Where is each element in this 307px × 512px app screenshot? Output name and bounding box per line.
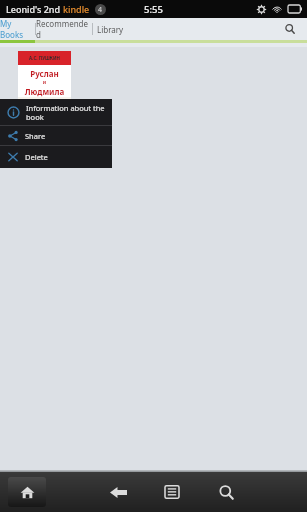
staticText: Руслан xyxy=(18,68,71,79)
button[interactable]: Home xyxy=(8,477,46,507)
staticText: А.С. ПУШКИН xyxy=(29,55,60,61)
staticText: My Books xyxy=(0,18,35,40)
staticText: Людмила xyxy=(18,86,71,97)
staticText: Information about the book xyxy=(26,103,105,122)
other: Battery xyxy=(288,5,302,13)
button[interactable]: Library xyxy=(93,18,127,40)
staticText: 5:55 xyxy=(144,3,163,16)
staticText: kindle xyxy=(63,3,90,15)
button[interactable]: А.С. ПУШКИН xyxy=(18,51,71,127)
button[interactable]: Share xyxy=(0,126,112,145)
button[interactable]: Delete xyxy=(0,146,112,168)
staticText: Library xyxy=(97,24,124,35)
button[interactable]: Information about the book xyxy=(0,99,112,125)
button[interactable]: Menu xyxy=(157,477,187,507)
button[interactable]: Search xyxy=(211,477,241,507)
staticText: Share xyxy=(25,131,46,141)
staticText: Recommended xyxy=(36,18,92,40)
staticText: Delete xyxy=(25,152,48,162)
other: Wi-Fi xyxy=(272,4,282,14)
button[interactable]: Search xyxy=(273,18,307,40)
button[interactable]: Back xyxy=(103,477,133,507)
button[interactable]: Recommended xyxy=(36,18,92,40)
other: Settings xyxy=(257,5,266,14)
staticText: 4 xyxy=(98,5,103,15)
staticText: и xyxy=(18,79,71,86)
staticText: Leonid's 2nd xyxy=(6,3,63,15)
button[interactable]: My Books xyxy=(0,18,35,40)
